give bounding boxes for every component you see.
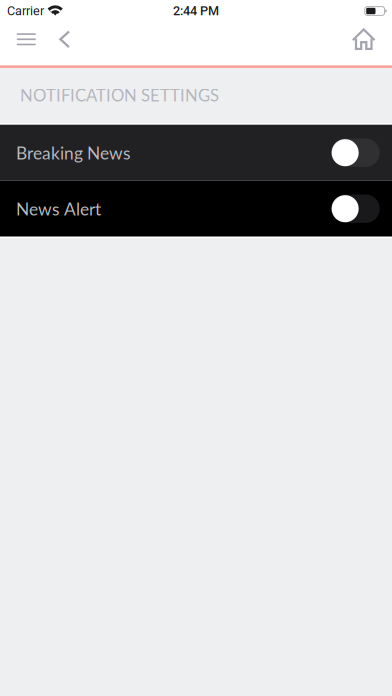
button[interactable]: Home	[335, 22, 392, 65]
staticText: 2:44 PM	[173, 4, 219, 18]
staticText: NOTIFICATION SETTINGS	[20, 85, 219, 105]
button[interactable]: Menu	[0, 22, 59, 65]
staticText: News Alert	[16, 198, 101, 219]
button[interactable]: Back	[59, 22, 82, 65]
button[interactable]: News Alert	[0, 181, 392, 237]
staticText: Breaking News	[16, 142, 131, 163]
button[interactable]: Breaking News	[0, 125, 392, 181]
staticText: Carrier	[7, 4, 44, 18]
